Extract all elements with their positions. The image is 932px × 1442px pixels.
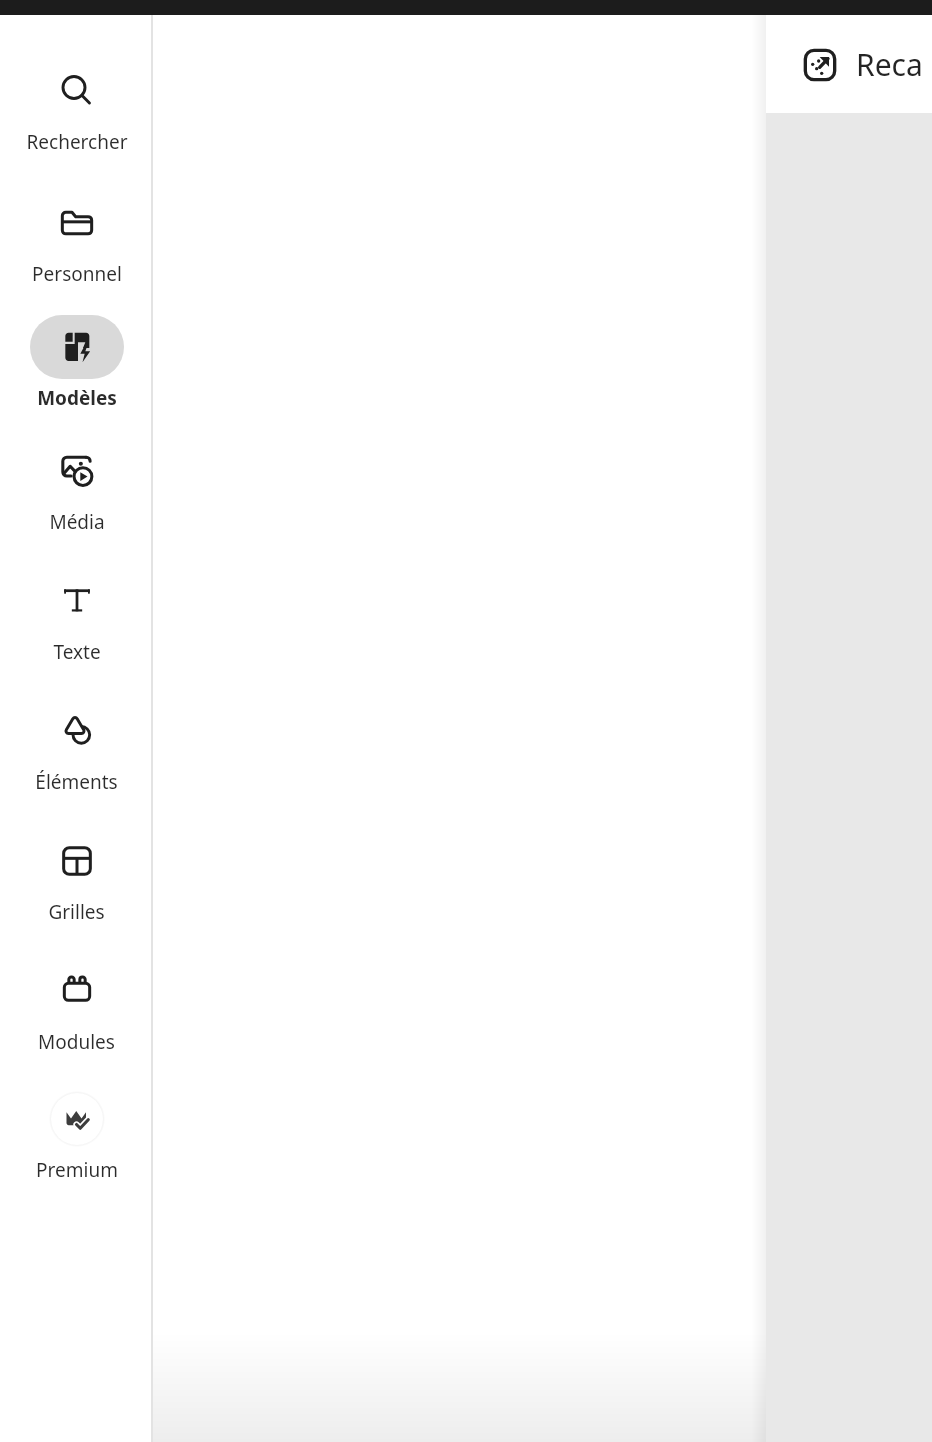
button[interactable]: Modèles — [0, 301, 153, 419]
button[interactable]: Premium — [0, 1073, 153, 1191]
button[interactable]: Média — [0, 425, 153, 543]
staticText: Média — [49, 509, 105, 535]
button[interactable]: Personnel — [0, 177, 153, 295]
button[interactable]: Texte — [0, 555, 153, 673]
staticText: Modules — [38, 1029, 115, 1055]
staticText: Recadrer — [856, 44, 932, 85]
staticText: Modèles — [37, 385, 117, 411]
staticText: Texte — [53, 639, 101, 665]
staticText: Rechercher — [26, 129, 128, 155]
staticText: Personnel — [32, 261, 122, 287]
other: Recadrer — [800, 45, 840, 85]
staticText: Premium — [36, 1157, 118, 1183]
button[interactable]: Rechercher — [0, 45, 153, 163]
button[interactable]: Recadrer — [800, 44, 932, 85]
button[interactable]: Éléments — [0, 685, 153, 803]
button[interactable]: Modules — [0, 945, 153, 1063]
button[interactable]: Grilles — [0, 815, 153, 933]
staticText: Grilles — [48, 899, 105, 925]
staticText: Éléments — [35, 769, 118, 795]
